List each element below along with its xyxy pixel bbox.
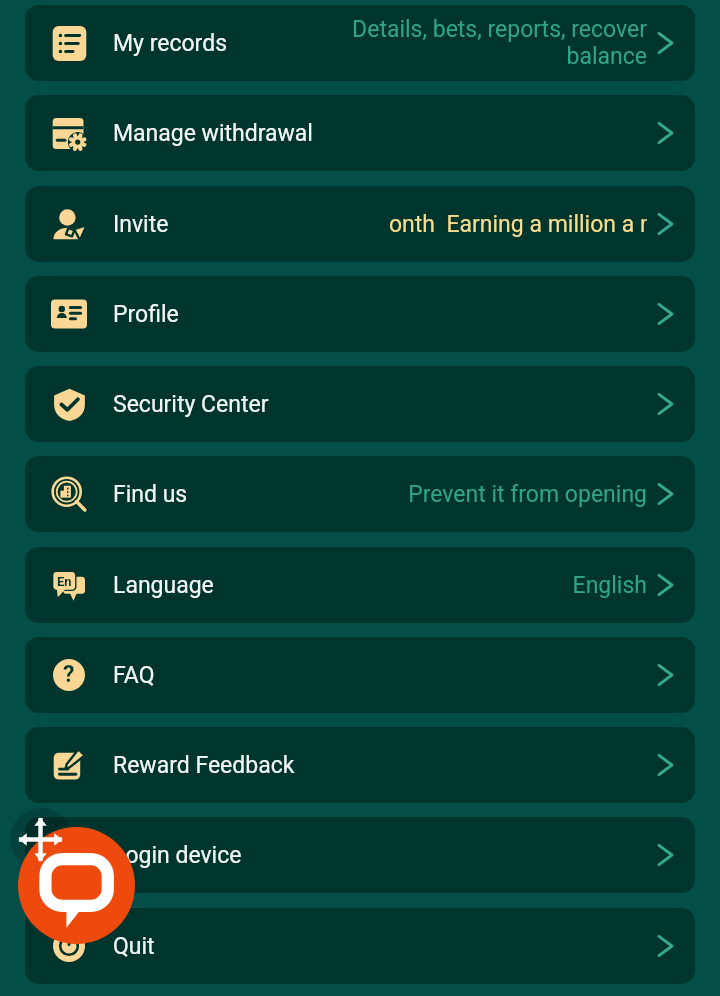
button[interactable]: En (25, 547, 695, 623)
button[interactable]: Security Center (25, 366, 695, 442)
staticText: FAQ (113, 662, 155, 689)
button[interactable]: Profile (25, 276, 695, 352)
staticText: Login device (113, 842, 242, 869)
staticText: Security Center (113, 391, 269, 418)
button[interactable]: My records (25, 5, 695, 81)
other: Move (18, 817, 63, 862)
staticText: En (57, 574, 72, 589)
button[interactable]: Login device (25, 817, 695, 893)
staticText: ? (63, 661, 75, 688)
staticText: English (572, 572, 647, 599)
staticText: My records (113, 30, 228, 57)
button[interactable]: Invite (25, 186, 695, 262)
button[interactable]: Manage withdrawal (25, 95, 695, 171)
staticText: Profile (113, 301, 179, 328)
staticText: Manage withdrawal (113, 120, 313, 147)
button[interactable]: Quit (25, 908, 695, 984)
staticText: Prevent it from opening (408, 481, 647, 508)
staticText: Invite (113, 211, 169, 238)
button[interactable]: ? (25, 637, 695, 713)
staticText: onth Earning a million a m (389, 211, 647, 238)
staticText: Language (113, 572, 214, 599)
button[interactable]: Reward Feedback (25, 727, 695, 803)
staticText: Quit (113, 933, 155, 960)
button[interactable]: Chat support (18, 827, 135, 944)
staticText: Details, bets, reports, recover balance (342, 16, 647, 70)
staticText: Find us (113, 481, 188, 508)
staticText: Reward Feedback (113, 752, 295, 779)
button[interactable]: Find us (25, 456, 695, 532)
